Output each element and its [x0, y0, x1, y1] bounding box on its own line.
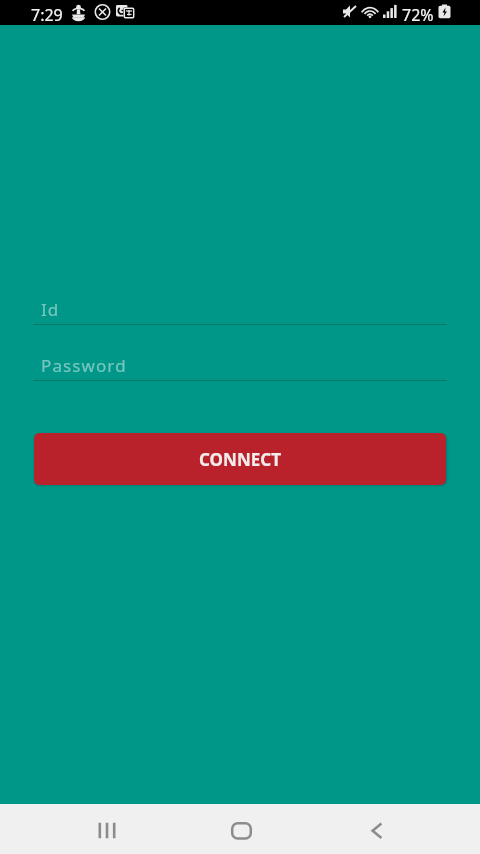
staticText: 7:29 — [31, 4, 63, 26]
staticText: Id — [41, 298, 60, 321]
button[interactable]: CONNECT — [34, 433, 446, 485]
button[interactable]: Home — [198, 804, 284, 854]
staticText: 72% — [402, 4, 434, 26]
staticText: Password — [41, 354, 127, 377]
button[interactable]: Recents — [64, 804, 150, 854]
button[interactable]: Id — [33, 288, 447, 325]
button[interactable]: Back — [333, 804, 419, 854]
staticText: CONNECT — [199, 448, 281, 471]
button[interactable]: Password — [33, 344, 447, 381]
